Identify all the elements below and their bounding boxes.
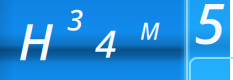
staticText: M — [140, 16, 159, 46]
staticText: 4 — [95, 17, 116, 68]
staticText: 3 — [67, 0, 83, 39]
staticText: 5 — [194, 0, 225, 59]
staticText: H — [18, 7, 53, 74]
